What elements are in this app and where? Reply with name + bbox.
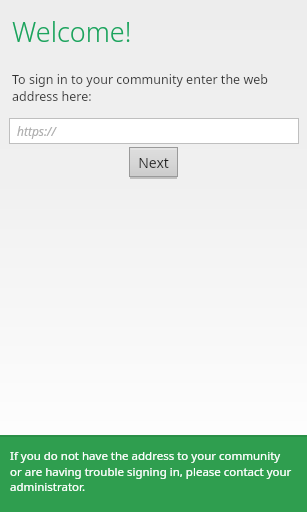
staticText: Welcome! (12, 13, 132, 50)
button[interactable]: https:// (9, 118, 299, 144)
staticText: Next (138, 153, 169, 172)
button[interactable]: Next (129, 147, 178, 179)
staticText: If you do not have the address to your c… (10, 448, 293, 494)
staticText: https:// (17, 123, 56, 139)
staticText: To sign in to your community enter the w… (12, 71, 293, 104)
